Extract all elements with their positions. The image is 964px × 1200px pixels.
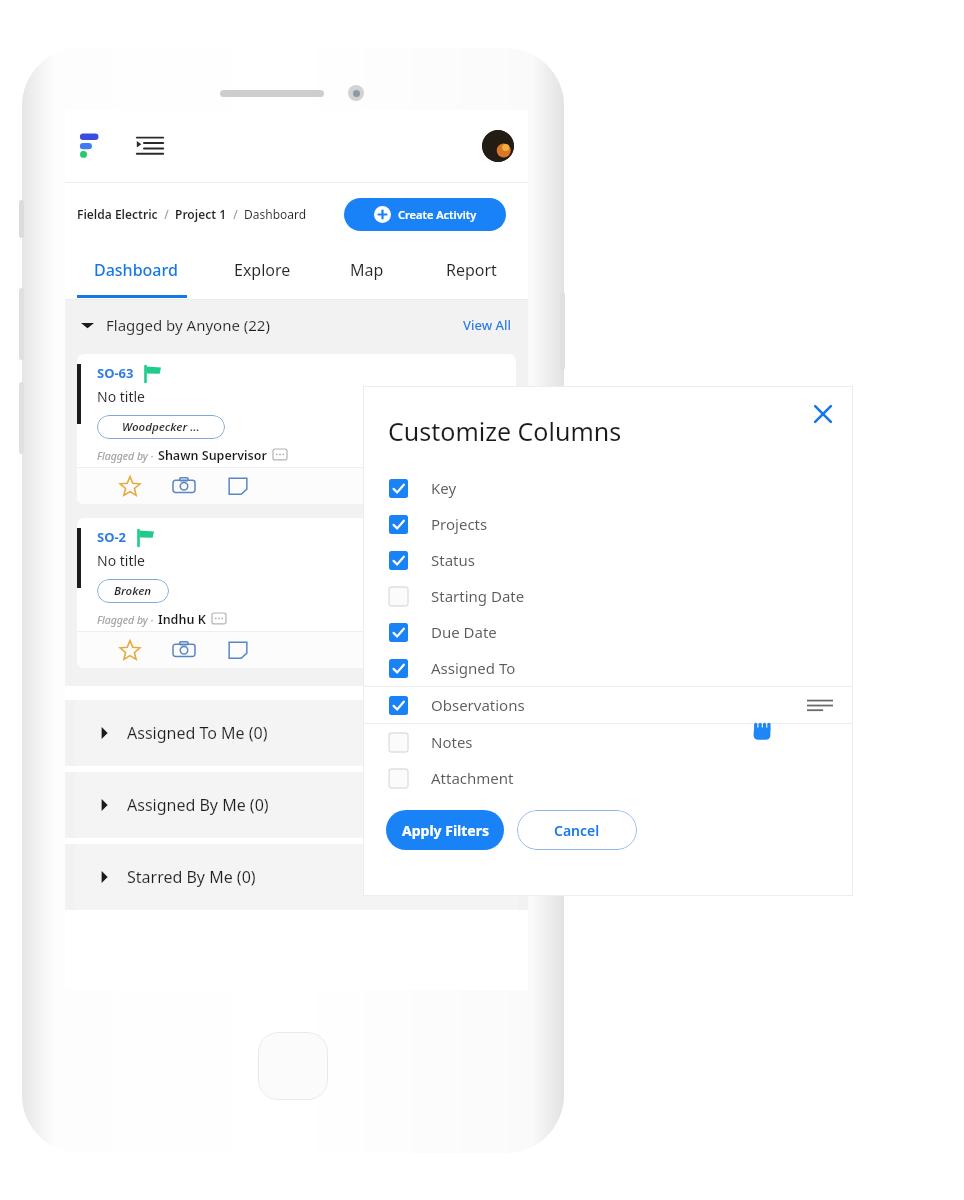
- button[interactable]: Starred By Me (0): [99, 844, 518, 910]
- button[interactable]: View All: [463, 316, 512, 334]
- button[interactable]: Observations: [389, 687, 853, 723]
- button[interactable]: Star: [117, 637, 143, 663]
- staticText: No title: [97, 551, 145, 570]
- staticText: Cancel: [554, 821, 600, 840]
- staticText: Report: [446, 259, 497, 281]
- staticText: Starred By Me (0): [127, 866, 256, 888]
- staticText: Fielda Electric: [77, 206, 158, 222]
- staticText: Notes: [431, 732, 473, 752]
- button[interactable]: Cancel: [517, 810, 637, 850]
- button[interactable]: Apply Filters: [386, 810, 504, 850]
- staticText: Customize Columns: [388, 414, 622, 448]
- staticText: Broken: [114, 583, 152, 599]
- button[interactable]: Notes: [389, 724, 853, 760]
- staticText: Apply Filters: [402, 821, 489, 840]
- button[interactable]: Assigned By Me (0): [99, 772, 518, 838]
- staticText: Woodpecker ...: [122, 419, 200, 435]
- button[interactable]: Dashboard: [65, 245, 206, 295]
- staticText: Assigned By Me (0): [127, 794, 269, 816]
- staticText: Flagged by ·: [97, 449, 154, 463]
- button[interactable]: SO-63: [77, 354, 516, 504]
- button[interactable]: Camera: [171, 637, 197, 663]
- button[interactable]: Assigned To Me (0): [99, 700, 518, 766]
- staticText: Explore: [234, 259, 291, 281]
- button[interactable]: Key: [389, 470, 853, 506]
- button[interactable]: Note: [225, 473, 251, 499]
- button[interactable]: Projects: [389, 506, 853, 542]
- staticText: Shawn Supervisor: [158, 447, 267, 464]
- button[interactable]: Reorder: [807, 692, 833, 718]
- staticText: Dashboard: [94, 259, 178, 281]
- button[interactable]: Attachment: [389, 760, 853, 796]
- staticText: SO-2: [97, 528, 127, 546]
- staticText: SO-63: [97, 364, 134, 382]
- button[interactable]: Status: [389, 542, 853, 578]
- button[interactable]: Menu: [135, 131, 165, 161]
- staticText: Flagged by ·: [97, 613, 154, 627]
- staticText: Key: [431, 478, 457, 498]
- button[interactable]: Flagged by Anyone (22): [81, 300, 512, 350]
- staticText: Status: [431, 550, 475, 570]
- staticText: Due Date: [431, 622, 497, 642]
- button[interactable]: Profile: [482, 130, 514, 162]
- button[interactable]: SO-2: [77, 518, 516, 668]
- button[interactable]: Assigned To: [389, 650, 853, 686]
- button[interactable]: Report: [415, 245, 528, 295]
- button[interactable]: Star: [117, 473, 143, 499]
- staticText: Assigned To Me (0): [127, 722, 268, 744]
- staticText: Attachment: [431, 768, 514, 788]
- staticText: /: [158, 206, 175, 222]
- staticText: Observations: [431, 695, 525, 715]
- staticText: Map: [350, 259, 384, 281]
- staticText: View All: [463, 316, 512, 334]
- button[interactable]: Camera: [171, 473, 197, 499]
- staticText: Projects: [431, 514, 488, 534]
- staticText: Assigned To: [431, 658, 516, 678]
- button[interactable]: Due Date: [389, 614, 853, 650]
- staticText: No title: [97, 387, 145, 406]
- staticText: /: [227, 206, 244, 222]
- button[interactable]: App logo: [79, 131, 109, 161]
- staticText: Project 1: [175, 206, 227, 222]
- staticText: Flagged by Anyone (22): [106, 315, 270, 335]
- button[interactable]: Close: [809, 400, 837, 428]
- button[interactable]: Create Activity: [344, 198, 506, 231]
- staticText: Starting Date: [431, 586, 525, 606]
- staticText: Indhu K: [158, 611, 206, 628]
- button[interactable]: Explore: [206, 245, 319, 295]
- staticText: Create Activity: [398, 207, 477, 222]
- button[interactable]: Map: [319, 245, 415, 295]
- button[interactable]: Note: [225, 637, 251, 663]
- button[interactable]: Starting Date: [389, 578, 853, 614]
- staticText: Dashboard: [244, 206, 307, 222]
